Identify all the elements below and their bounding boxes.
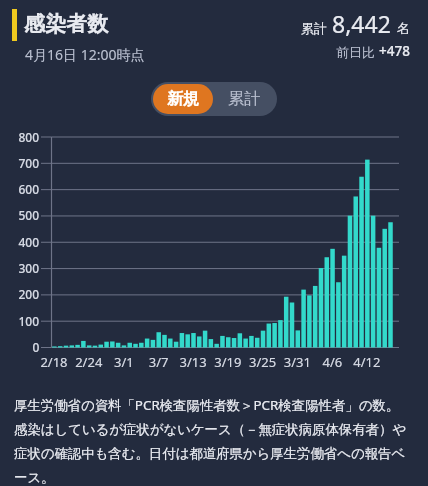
staticText: 8,442 <box>332 8 391 39</box>
staticText: 前日比 <box>336 44 375 60</box>
staticText: 厚生労働省の資料「PCR検査陽性者数＞PCR検査陽性者」の数。 感染はしているが… <box>14 396 407 486</box>
staticText: +478 <box>379 42 410 60</box>
staticText: 新規 <box>167 89 199 109</box>
button[interactable]: 累計 <box>213 84 275 114</box>
staticText: 感染者数 <box>24 11 108 37</box>
staticText: 4月16日 12:00時点 <box>25 45 145 64</box>
staticText: 累計 <box>301 20 327 36</box>
button[interactable]: 新規 <box>153 84 213 114</box>
staticText: 累計 <box>228 89 260 109</box>
staticText: 名 <box>397 20 410 36</box>
